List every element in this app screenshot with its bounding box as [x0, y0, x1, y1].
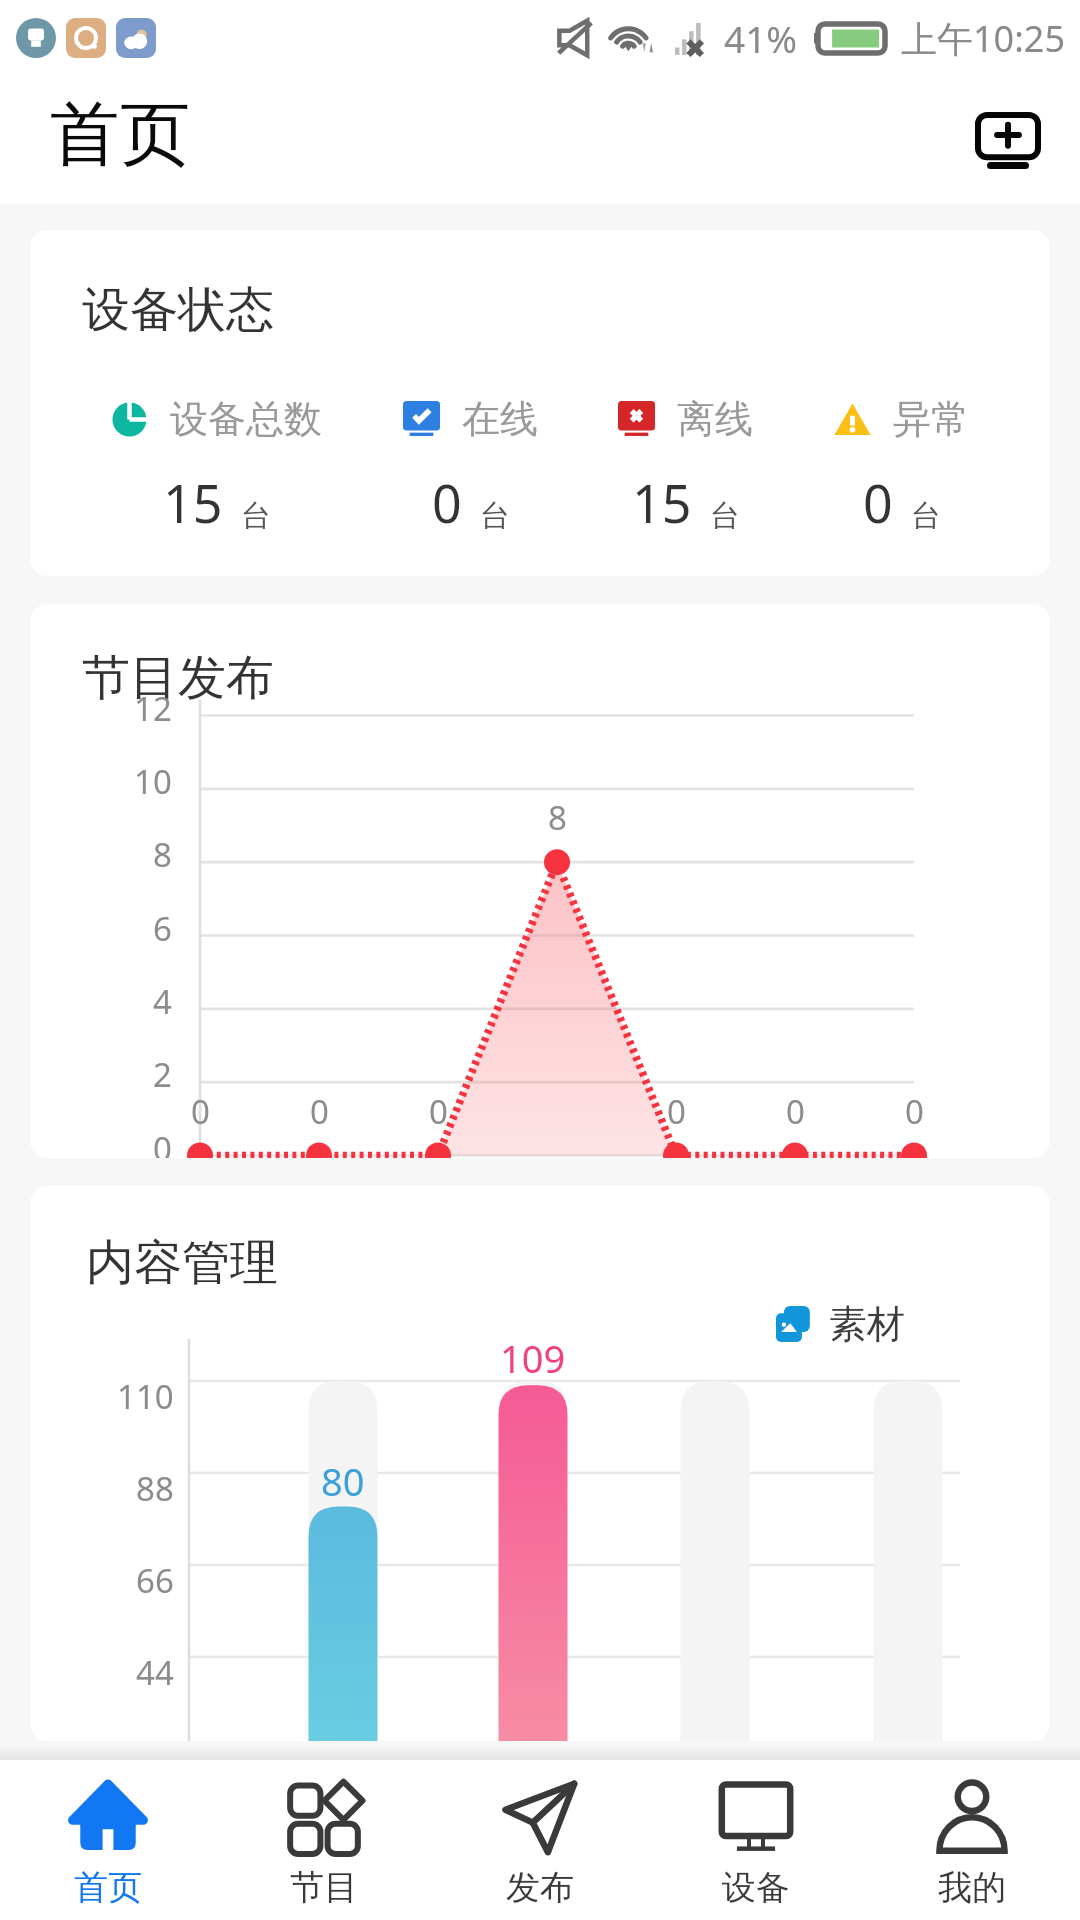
staticText: 离线	[677, 395, 753, 443]
staticText: 88	[136, 1466, 174, 1510]
button[interactable]: 异常	[834, 395, 969, 538]
staticText: 4	[153, 979, 172, 1023]
staticText: 设备	[722, 1866, 790, 1909]
staticText: 80	[321, 1455, 365, 1501]
button[interactable]: 设备总数	[111, 395, 322, 538]
staticText: 6	[153, 906, 172, 950]
staticText: 109	[500, 1332, 566, 1378]
staticText: 我的	[938, 1866, 1006, 1909]
staticText: 素材	[829, 1300, 905, 1348]
staticText: 0	[863, 467, 893, 538]
staticText: 8	[548, 795, 567, 839]
staticText: 66	[136, 1558, 174, 1602]
staticText: 节目	[290, 1866, 358, 1909]
staticText: 15	[632, 467, 692, 538]
staticText: 0	[905, 1089, 924, 1133]
button[interactable]: 发布	[432, 1760, 648, 1920]
button[interactable]: 节目发布	[30, 604, 1050, 1158]
button[interactable]: 设备	[648, 1760, 864, 1920]
staticText: 10	[134, 759, 172, 803]
staticText: 发布	[506, 1866, 574, 1909]
staticText: 内容管理	[86, 1233, 278, 1293]
staticText: 设备总数	[170, 395, 322, 443]
staticText: 0	[310, 1089, 329, 1133]
staticText: 台	[911, 497, 941, 535]
staticText: 台	[710, 497, 740, 535]
staticText: 节目发布	[82, 648, 274, 708]
staticText: 110	[117, 1374, 174, 1418]
staticText: 0	[432, 467, 462, 538]
staticText: 0	[429, 1089, 448, 1133]
staticText: 设备状态	[82, 280, 274, 340]
staticText: 44	[136, 1650, 174, 1694]
button[interactable]: 节目	[216, 1760, 432, 1920]
staticText: 0	[786, 1089, 805, 1133]
staticText: 上午10:25	[901, 14, 1066, 63]
staticText: 15	[163, 467, 223, 538]
staticText: 41%	[724, 13, 798, 63]
staticText: 台	[241, 497, 271, 535]
button[interactable]: 设备状态	[30, 230, 1050, 576]
staticText: 在线	[462, 395, 538, 443]
staticText: 0	[667, 1089, 686, 1133]
button[interactable]: 素材	[776, 1300, 905, 1348]
staticText: 12	[134, 686, 172, 730]
staticText: 2	[153, 1052, 172, 1096]
staticText: 首页	[74, 1866, 142, 1909]
button[interactable]: 内容管理	[30, 1186, 1050, 1741]
button[interactable]: Add screen	[966, 98, 1050, 182]
staticText: 首页	[50, 91, 190, 179]
staticText: 异常	[893, 395, 969, 443]
staticText: 0	[153, 1126, 172, 1158]
button[interactable]: 首页	[0, 1760, 216, 1920]
button[interactable]: 离线	[618, 395, 753, 538]
button[interactable]: 在线	[403, 395, 538, 538]
staticText: 8	[153, 832, 172, 876]
staticText: 台	[480, 497, 510, 535]
staticText: 0	[191, 1089, 210, 1133]
button[interactable]: 我的	[864, 1760, 1080, 1920]
